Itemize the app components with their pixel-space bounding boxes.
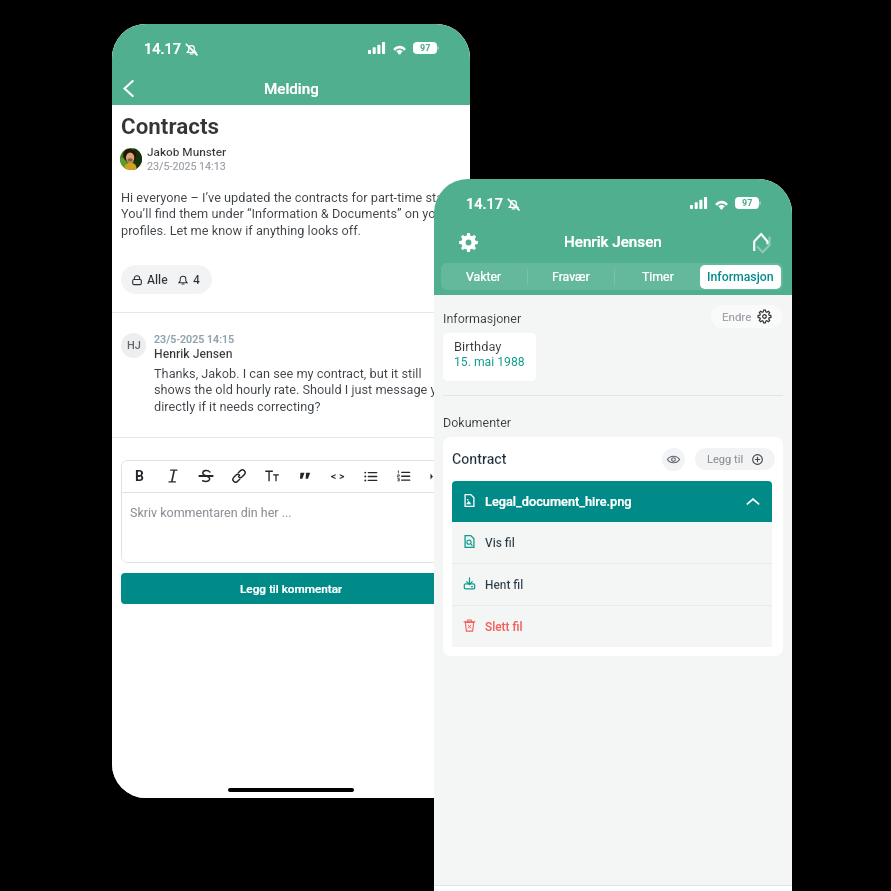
staticText: 4 [193, 273, 200, 287]
button[interactable]: Settings [454, 228, 482, 256]
button[interactable] [189, 461, 222, 491]
staticText: Vakter [466, 270, 502, 284]
staticText: Alle [147, 273, 168, 287]
staticText: HJ [127, 339, 141, 352]
staticText: Endre [722, 310, 752, 323]
button[interactable]: Endre [711, 305, 782, 328]
staticText: Contracts [121, 113, 219, 139]
staticText: Dokumenter [443, 415, 512, 430]
staticText: < > [331, 470, 345, 482]
button[interactable]: Fravær [528, 263, 614, 290]
button[interactable]: Timer [615, 263, 701, 290]
staticText: Legal_document_hire.png [485, 494, 632, 509]
button[interactable] [255, 461, 288, 491]
button[interactable]: Legg til kommentar [121, 573, 461, 604]
staticText: 97 [420, 43, 431, 54]
button[interactable] [420, 461, 453, 491]
staticText: Legg til [707, 453, 744, 466]
staticText: Hi everyone – I’ve updated the contracts… [121, 190, 465, 238]
staticText: Timer [642, 270, 674, 284]
button[interactable]: Hent fil [452, 564, 772, 605]
staticText: Informasjon [707, 270, 774, 284]
staticText: Fravær [552, 270, 590, 284]
staticText: Melding [264, 80, 319, 98]
staticText: 23/5-2025 14:15 [154, 333, 235, 346]
staticText: Thanks, Jakob. I can see my contract, bu… [154, 366, 454, 414]
button[interactable]: Legal_document_hire.png [452, 481, 772, 522]
button[interactable] [354, 461, 387, 491]
staticText: Vis fil [485, 536, 515, 550]
staticText: Jakob Munster [147, 145, 227, 159]
button[interactable] [222, 461, 255, 491]
button[interactable]: Alle [121, 265, 212, 294]
button[interactable]: Birthday [443, 333, 536, 381]
button[interactable]: < > [321, 461, 354, 491]
button[interactable] [156, 461, 189, 491]
staticText: Skriv kommentaren din her ... [130, 505, 292, 520]
staticText: Hent fil [485, 578, 524, 592]
button[interactable]: Back [112, 73, 145, 103]
button[interactable]: B [123, 461, 156, 491]
button[interactable]: Slett fil [452, 606, 772, 647]
button[interactable]: Preview [662, 448, 685, 471]
staticText: 15. mai 1988 [454, 355, 525, 369]
staticText: Birthday [454, 339, 502, 354]
staticText: Legg til kommentar [240, 582, 343, 596]
staticText: 14.17 [466, 196, 503, 213]
button[interactable]: Legg til [695, 448, 775, 470]
button[interactable]: Vakter [441, 263, 527, 290]
staticText: 97 [742, 198, 753, 209]
button[interactable]: Informasjon [700, 265, 781, 289]
staticText: Henrik Jensen [564, 233, 662, 251]
button[interactable]: App logo [746, 228, 774, 256]
button[interactable] [387, 461, 420, 491]
button[interactable]: Vis fil [452, 522, 772, 563]
staticText: 14.17 [144, 41, 181, 58]
staticText: 23/5-2025 14:13 [147, 160, 226, 173]
staticText: Slett fil [485, 620, 523, 634]
staticText: Informasjoner [443, 311, 522, 326]
staticText: Contract [452, 451, 507, 468]
button[interactable] [288, 461, 321, 491]
staticText: B [135, 468, 144, 484]
staticText: Henrik Jensen [154, 347, 233, 361]
